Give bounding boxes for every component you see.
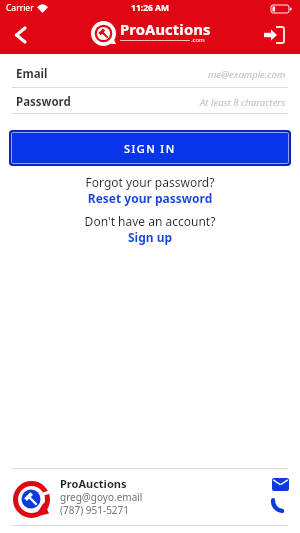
button[interactable]: Sign up	[0, 229, 300, 245]
staticText: greg@goyo.email	[60, 490, 143, 504]
button[interactable]	[4, 22, 36, 48]
button[interactable]: SIGN IN	[9, 130, 291, 166]
staticText: SIGN IN	[124, 141, 176, 156]
staticText: Carrier	[6, 2, 34, 14]
staticText: ProAuctions	[120, 19, 211, 39]
staticText: (787) 951-5271	[60, 503, 130, 517]
button[interactable]: Reset your password	[0, 190, 300, 206]
button[interactable]	[266, 494, 294, 516]
staticText: ProAuctions	[60, 476, 127, 491]
button[interactable]	[258, 22, 292, 48]
staticText: Password	[16, 94, 71, 110]
staticText: me@example.com	[208, 68, 286, 81]
button[interactable]	[266, 474, 294, 495]
staticText: Don't have an account?	[0, 213, 300, 229]
staticText: .com	[191, 36, 205, 44]
staticText: Email	[16, 66, 48, 82]
staticText: Forgot your password?	[0, 174, 300, 190]
staticText: 11:26 AM	[0, 2, 300, 14]
staticText: At least 8 characters	[200, 96, 286, 109]
